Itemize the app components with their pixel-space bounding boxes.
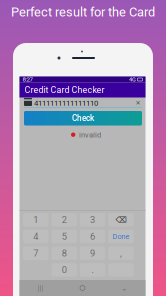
staticText: 8:27 <box>22 76 32 83</box>
staticText: 0 <box>62 264 67 275</box>
button[interactable]: . <box>80 263 105 277</box>
button[interactable]: Check <box>24 111 142 125</box>
button[interactable]: 2 <box>51 213 77 226</box>
button[interactable]: 0 <box>51 263 77 277</box>
button[interactable]: 7 <box>23 246 48 260</box>
staticText: Check <box>72 113 94 123</box>
staticText: ||| <box>37 284 43 292</box>
button[interactable]: Done <box>108 230 134 243</box>
button[interactable]: 9 <box>80 246 105 260</box>
staticText: 3 <box>90 214 95 225</box>
staticText: 4 <box>33 231 38 242</box>
button[interactable]: , <box>108 246 134 260</box>
staticText: ⌄ <box>121 283 128 293</box>
button[interactable]: 6 <box>80 230 105 243</box>
staticText: 2 <box>62 214 67 225</box>
staticText: 8 <box>62 248 67 259</box>
button[interactable]: Delete <box>108 213 134 226</box>
staticText: Credit Card Checker <box>24 85 104 95</box>
staticText: 1 <box>33 214 38 225</box>
button[interactable]: 5 <box>51 230 77 243</box>
button[interactable]: Home <box>61 280 103 296</box>
staticText: 7 <box>33 248 38 259</box>
staticText: ⌫ <box>115 215 126 224</box>
button[interactable]: 4 <box>23 230 48 243</box>
staticText: ✕ <box>135 99 140 106</box>
staticText: , <box>120 248 122 259</box>
button[interactable]: 3 <box>80 213 105 226</box>
staticText: . <box>91 264 93 275</box>
staticText: 6 <box>90 231 95 242</box>
button[interactable]: Clear <box>135 99 140 106</box>
staticText: invalid <box>79 131 101 139</box>
button[interactable]: 1 <box>23 213 48 226</box>
staticText: 4111111111111110 <box>34 98 98 108</box>
staticText: 4G <box>129 76 136 83</box>
staticText: Perfect result for the Card <box>11 4 155 19</box>
button[interactable]: Back <box>103 280 145 296</box>
staticText: Done <box>112 232 129 241</box>
button[interactable]: 8 <box>51 246 77 260</box>
staticText: 5 <box>62 231 67 242</box>
staticText: 9 <box>90 248 95 259</box>
button[interactable]: Recents <box>19 280 61 296</box>
